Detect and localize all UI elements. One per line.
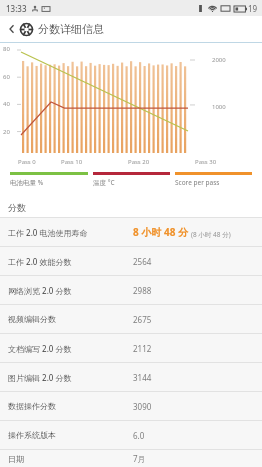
staticText: 6.0 (133, 430, 145, 441)
staticText: Pass 10 (61, 158, 83, 166)
staticText: 3090 (133, 401, 152, 412)
staticText: 工作 2.0 电池使用寿命 (8, 227, 88, 238)
staticText: 2564 (133, 256, 152, 267)
staticText: 80 (3, 45, 10, 53)
staticText: 20 (3, 128, 10, 136)
staticText: 3144 (133, 372, 152, 383)
staticText: 7月 (133, 453, 146, 464)
staticText: 电池电量 % (10, 178, 44, 187)
button[interactable]: 数据操作分数 (0, 392, 262, 420)
staticText: 温度 °C (93, 178, 115, 187)
staticText: 2675 (133, 314, 152, 325)
staticText: Pass 30 (195, 158, 217, 166)
staticText: 40 (3, 100, 10, 108)
button[interactable]: 视频编辑分数 (0, 305, 262, 333)
staticText: 工作 2.0 效能分数 (8, 256, 72, 267)
staticText: 13:33 (6, 3, 27, 14)
staticText: 文档编写 2.0 分数 (8, 343, 72, 354)
staticText: 60 (3, 73, 10, 81)
button[interactable]: Back (4, 21, 20, 37)
button[interactable]: 网络浏览 2.0 分数 (0, 276, 262, 304)
staticText: 数据操作分数 (8, 401, 56, 411)
staticText: 8 小时 48 分 (133, 225, 188, 239)
staticText: 分数 (8, 202, 26, 213)
button[interactable]: 日期 (0, 450, 262, 467)
staticText: Score per pass (175, 178, 220, 187)
staticText: 2000 (212, 56, 226, 64)
staticText: 19 (248, 3, 258, 14)
staticText: 2988 (133, 285, 152, 296)
staticText: 2112 (133, 343, 152, 354)
button[interactable]: 操作系统版本 (0, 421, 262, 449)
staticText: (8 小时 48 分) (191, 230, 231, 239)
staticText: 分数详细信息 (38, 22, 104, 36)
staticText: 图片编辑 2.0 分数 (8, 372, 72, 383)
staticText: Pass 0 (18, 158, 36, 166)
staticText: 网络浏览 2.0 分数 (8, 285, 72, 296)
staticText: 日期 (8, 454, 24, 464)
button[interactable]: 工作 2.0 效能分数 (0, 247, 262, 275)
button[interactable]: 文档编写 2.0 分数 (0, 334, 262, 362)
button[interactable]: 工作 2.0 电池使用寿命 (0, 218, 262, 246)
button[interactable]: Back (0, 16, 262, 42)
staticText: 1000 (212, 103, 226, 111)
staticText: 视频编辑分数 (8, 314, 56, 324)
button[interactable]: 图片编辑 2.0 分数 (0, 363, 262, 391)
staticText: 操作系统版本 (8, 430, 56, 440)
staticText: Pass 20 (128, 158, 150, 166)
